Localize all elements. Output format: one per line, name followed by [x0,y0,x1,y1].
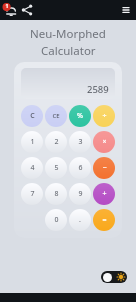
button[interactable]: . [69,209,91,231]
button[interactable]: 9 [69,183,91,205]
staticText: 9 [78,189,83,199]
button[interactable]: ÷ [93,105,115,127]
button[interactable]: + [93,183,115,205]
button[interactable]: 2 [45,131,67,153]
button[interactable]: 6 [69,157,91,179]
staticText: Neu-Morphed [30,26,106,42]
button[interactable]: 0 [45,209,67,231]
staticText: 3 [78,137,83,147]
button[interactable]: 7 [21,183,43,205]
staticText: × [102,137,107,147]
staticText: = [102,215,107,225]
button[interactable]: − [93,157,115,179]
staticText: ÷ [102,111,107,121]
staticText: 8 [54,189,59,199]
staticText: CE [52,112,60,120]
staticText: − [102,163,107,173]
staticText: 4 [30,163,35,173]
button[interactable]: 8 [45,183,67,205]
button[interactable]: × [93,131,115,153]
staticText: 1 [30,137,35,147]
button[interactable]: Notifications [2,2,19,19]
staticText: 6 [78,163,83,173]
button[interactable]: % [69,105,91,127]
staticText: 2 [54,137,59,147]
staticText: + [102,189,107,199]
staticText: % [77,111,83,121]
staticText: . [79,215,81,225]
staticText: 5 [54,163,59,173]
button[interactable]: 3 [69,131,91,153]
button[interactable]: 4 [21,157,43,179]
button[interactable]: Share [20,3,34,17]
staticText: 2589 [87,83,109,96]
staticText: 7 [30,189,35,199]
button[interactable]: Toggle dark mode [101,271,127,283]
button[interactable]: Menu [120,4,132,16]
button[interactable]: = [93,209,115,231]
button[interactable]: CE [45,105,67,127]
button[interactable]: 5 [45,157,67,179]
staticText: 0 [54,215,59,225]
button[interactable]: C [21,105,43,127]
staticText: 1 [4,3,10,10]
button[interactable]: 1 [21,131,43,153]
staticText: C [30,111,35,121]
staticText: Calculator [41,43,96,59]
